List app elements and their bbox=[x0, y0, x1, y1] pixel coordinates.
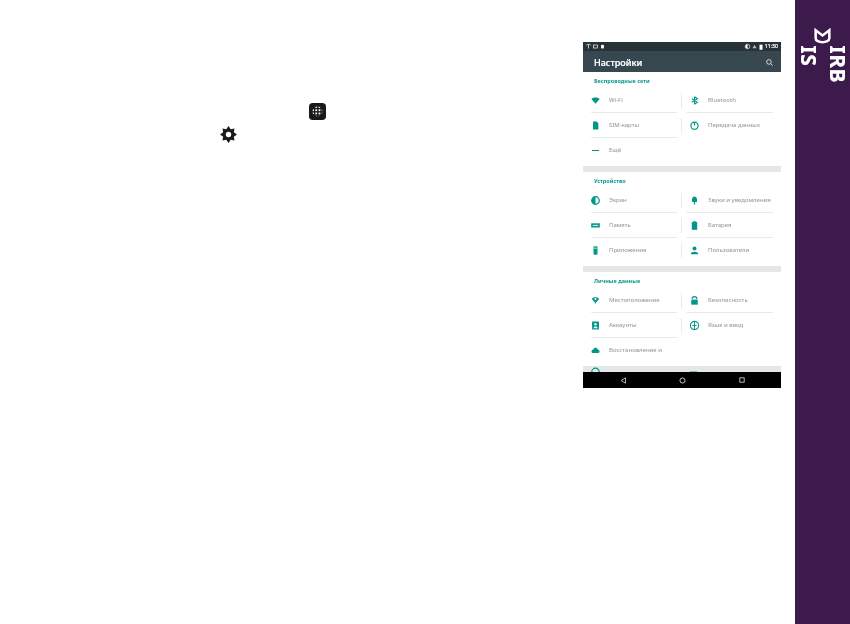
button[interactable]: Восстановление и сброс bbox=[583, 338, 681, 362]
staticText: Беспроводные сети bbox=[594, 77, 650, 84]
staticText: Язык и ввод bbox=[708, 321, 744, 329]
staticText: Экран bbox=[609, 196, 627, 204]
staticText: Пользователи bbox=[708, 246, 750, 254]
staticText: IRBIS bbox=[793, 45, 850, 84]
button[interactable]: Back bbox=[603, 372, 643, 388]
staticText: SIM-карты bbox=[609, 121, 640, 129]
staticText: Аккаунты bbox=[609, 321, 637, 329]
staticText: Звуки и уведомления bbox=[708, 196, 771, 204]
staticText: Wi-Fi bbox=[609, 96, 623, 104]
staticText: Память bbox=[609, 221, 631, 229]
staticText: Настройки bbox=[594, 56, 643, 68]
button[interactable]: Ещё bbox=[583, 138, 681, 162]
button[interactable]: Home bbox=[662, 372, 702, 388]
button[interactable]: Память bbox=[583, 213, 681, 237]
button[interactable]: Язык и ввод bbox=[682, 313, 781, 337]
staticText: Местоположение bbox=[609, 296, 660, 304]
button[interactable]: Аккаунты bbox=[583, 313, 681, 337]
button[interactable]: Apps grid bbox=[309, 103, 326, 120]
button[interactable]: Местоположение bbox=[583, 288, 681, 312]
button[interactable]: Приложения bbox=[583, 238, 681, 262]
button[interactable]: Передача данных bbox=[682, 113, 781, 137]
button[interactable]: Безопасность bbox=[682, 288, 781, 312]
staticText: Личные данные bbox=[594, 277, 641, 284]
button[interactable]: Settings gear bbox=[220, 126, 237, 143]
button[interactable]: Bluetooth bbox=[682, 88, 781, 112]
staticText: Приложения bbox=[609, 246, 647, 254]
staticText: Безопасность bbox=[708, 296, 748, 304]
staticText: Устройство bbox=[594, 177, 626, 184]
button[interactable]: Recent apps bbox=[722, 372, 762, 388]
button[interactable]: Search bbox=[762, 55, 776, 69]
staticText: Ещё bbox=[609, 146, 622, 154]
staticText: Восстановление и сброс bbox=[609, 346, 678, 354]
button[interactable]: Wi-Fi bbox=[583, 88, 681, 112]
staticText: Bluetooth bbox=[708, 96, 736, 104]
button[interactable]: SIM-карты bbox=[583, 113, 681, 137]
staticText: 11:30 bbox=[765, 43, 778, 50]
staticText: Передача данных bbox=[708, 121, 760, 129]
button[interactable]: Пользователи bbox=[682, 238, 781, 262]
button[interactable]: Звуки и уведомления bbox=[682, 188, 781, 212]
staticText: Батарея bbox=[708, 221, 732, 229]
button[interactable]: Экран bbox=[583, 188, 681, 212]
button[interactable]: Батарея bbox=[682, 213, 781, 237]
